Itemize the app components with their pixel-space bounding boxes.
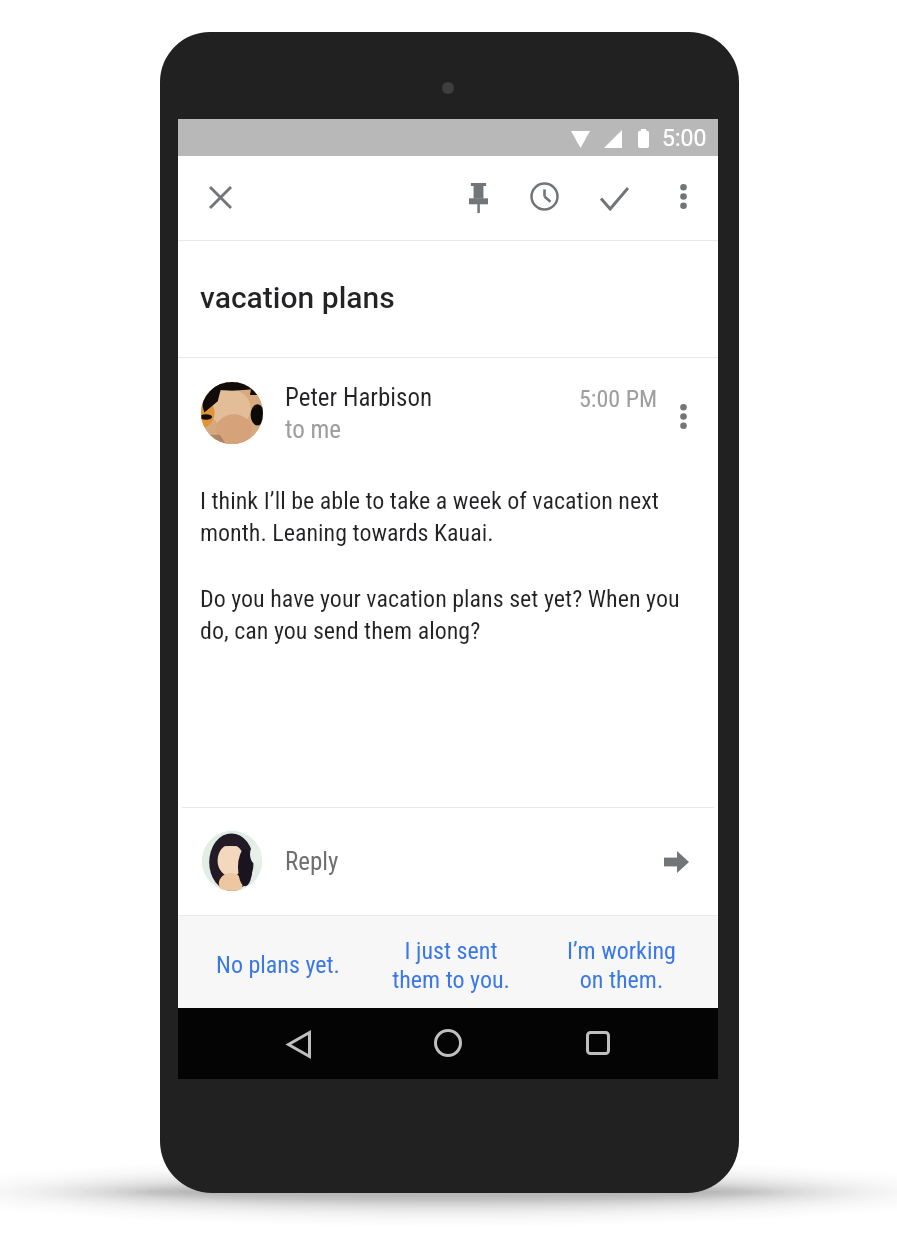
staticText: No plans yet.	[216, 951, 340, 979]
button[interactable]: Snooze	[520, 172, 568, 220]
button[interactable]: I’m working on them.	[536, 919, 706, 1011]
staticText: 5:00 PM	[579, 385, 658, 413]
staticText: Do you have your vacation plans set yet?…	[200, 585, 696, 645]
staticText: to me	[285, 415, 341, 444]
button[interactable]: Pin	[454, 174, 502, 222]
button[interactable]: Done	[590, 174, 638, 222]
staticText: I think I’ll be able to take a week of v…	[200, 487, 696, 547]
button[interactable]: I just sent them to you.	[366, 919, 536, 1011]
staticText: Reply	[285, 847, 339, 876]
button[interactable]: Reply	[178, 808, 718, 915]
button[interactable]: Message options	[661, 394, 705, 438]
button[interactable]: Home	[424, 1019, 472, 1067]
button[interactable]: Close	[196, 173, 244, 221]
button[interactable]: No plans yet.	[193, 919, 363, 1011]
staticText: I just sent them to you.	[392, 937, 510, 994]
staticText: 5:00	[662, 125, 707, 152]
staticText: I’m working on them.	[567, 937, 676, 994]
staticText: Peter Harbison	[285, 383, 433, 412]
button[interactable]: Send reply	[652, 838, 700, 886]
staticText: vacation plans	[200, 280, 395, 315]
button[interactable]: Back	[275, 1020, 323, 1068]
button[interactable]: More options	[659, 172, 707, 220]
button[interactable]: Recent apps	[574, 1019, 622, 1067]
